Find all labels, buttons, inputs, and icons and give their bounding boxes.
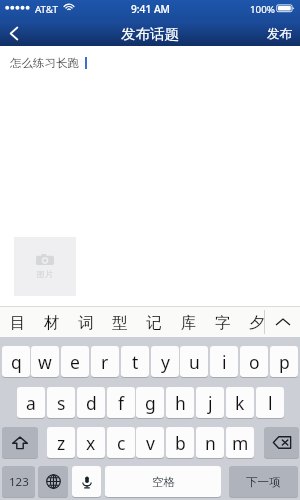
staticText: a (26, 391, 36, 415)
button[interactable]: k (226, 387, 254, 418)
staticText: l (268, 391, 273, 415)
button[interactable]: Switch keyboard (38, 466, 68, 497)
button[interactable]: i (210, 346, 238, 377)
staticText: c (117, 431, 126, 455)
button[interactable]: 下一项 (229, 466, 298, 497)
button[interactable]: 夕 (240, 307, 274, 337)
staticText: 目 (10, 313, 26, 333)
button[interactable]: z (47, 427, 75, 458)
button[interactable]: v (136, 427, 164, 458)
staticText: i (222, 350, 227, 374)
button[interactable]: 目 (1, 307, 35, 337)
staticText: z (57, 431, 66, 455)
button[interactable]: y (151, 346, 179, 377)
button[interactable]: u (180, 346, 208, 377)
button[interactable]: e (61, 346, 89, 377)
staticText: e (70, 350, 80, 374)
staticText: 发布 (267, 26, 292, 42)
staticText: k (235, 391, 245, 415)
staticText: t (132, 350, 139, 374)
staticText: 怎么练习长跑 (10, 56, 79, 70)
staticText: 下一项 (246, 475, 281, 489)
staticText: h (175, 391, 186, 415)
staticText: u (189, 350, 200, 374)
button[interactable]: b (166, 427, 194, 458)
staticText: n (205, 431, 216, 455)
staticText: 123 (9, 474, 29, 490)
button[interactable]: r (91, 346, 119, 377)
button[interactable]: 记 (137, 307, 171, 337)
staticText: x (86, 431, 96, 455)
staticText: AT&T (35, 3, 58, 16)
staticText: 记 (146, 313, 162, 333)
staticText: 100% (250, 3, 275, 16)
staticText: 型 (112, 313, 128, 333)
staticText: 9:41 AM (131, 2, 170, 16)
staticText: f (118, 391, 125, 415)
button[interactable]: 词 (69, 307, 103, 337)
staticText: m (232, 431, 249, 455)
button[interactable]: Add photo (14, 237, 76, 296)
button[interactable]: j (196, 387, 224, 418)
button[interactable]: w (31, 346, 59, 377)
button[interactable]: Shift (2, 427, 38, 458)
staticText: 材 (44, 313, 60, 333)
button[interactable]: a (17, 387, 45, 418)
staticText: o (249, 350, 260, 374)
staticText: 夕 (249, 313, 265, 333)
button[interactable]: 材 (35, 307, 69, 337)
staticText: 发布话题 (121, 25, 179, 43)
button[interactable]: 字 (206, 307, 240, 337)
staticText: b (175, 431, 186, 455)
button[interactable]: 发布 (257, 20, 300, 46)
button[interactable]: 库 (172, 307, 206, 337)
staticText: y (161, 350, 170, 374)
button[interactable]: o (240, 346, 268, 377)
button[interactable]: m (226, 427, 254, 458)
button[interactable]: s (47, 387, 75, 418)
button[interactable]: More candidates (265, 307, 300, 337)
staticText: 图片 (37, 269, 53, 279)
staticText: 空格 (152, 475, 175, 489)
staticText: 库 (181, 313, 197, 333)
button[interactable]: p (270, 346, 298, 377)
staticText: r (101, 350, 109, 374)
button[interactable]: q (2, 346, 30, 377)
button[interactable]: l (256, 387, 284, 418)
staticText: d (86, 391, 97, 415)
button[interactable]: h (166, 387, 194, 418)
staticText: j (208, 391, 213, 415)
button[interactable]: n (196, 427, 224, 458)
button[interactable]: g (136, 387, 164, 418)
staticText: v (146, 431, 155, 455)
button[interactable]: Voice input (72, 466, 101, 497)
button[interactable]: 123 (2, 466, 35, 497)
staticText: p (279, 350, 290, 374)
button[interactable]: t (121, 346, 149, 377)
button[interactable]: 型 (103, 307, 137, 337)
staticText: g (145, 391, 156, 415)
button[interactable]: Back (0, 20, 30, 46)
staticText: q (11, 350, 22, 374)
button[interactable]: 空格 (105, 466, 221, 497)
staticText: w (38, 350, 52, 374)
button[interactable]: c (107, 427, 135, 458)
staticText: 字 (215, 313, 231, 333)
button[interactable]: Delete (264, 427, 299, 458)
button[interactable]: d (77, 387, 105, 418)
button[interactable]: x (77, 427, 105, 458)
staticText: s (57, 391, 66, 415)
button[interactable]: f (107, 387, 135, 418)
staticText: 词 (78, 313, 94, 333)
